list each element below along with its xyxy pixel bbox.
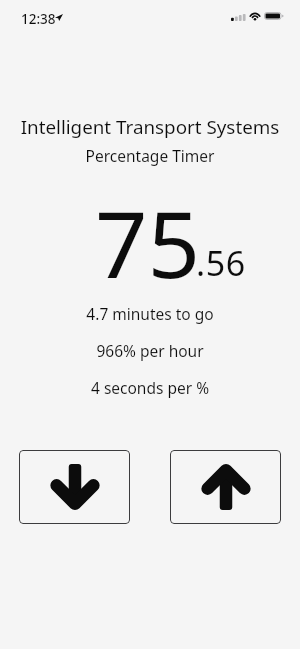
- staticText: Intelligent Transport Systems: [0, 114, 300, 140]
- staticText: 4.7 minutes to go: [0, 303, 300, 324]
- button[interactable]: Decrease: [19, 450, 130, 524]
- staticText: 12:38: [21, 10, 56, 28]
- staticText: 75: [95, 180, 201, 305]
- staticText: 4 seconds per %: [0, 377, 300, 398]
- staticText: 966% per hour: [0, 340, 300, 361]
- staticText: .56: [196, 240, 246, 286]
- button[interactable]: Increase: [170, 450, 281, 524]
- staticText: Percentage Timer: [0, 145, 300, 166]
